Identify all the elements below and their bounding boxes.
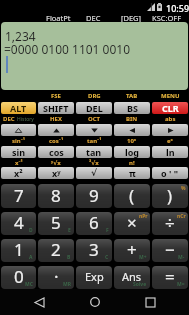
staticText: −: [165, 239, 175, 261]
staticText: √: [91, 168, 98, 178]
button[interactable]: Exp: [76, 266, 112, 289]
button[interactable]: xʸ: [38, 167, 74, 179]
button[interactable]: SHIFT: [38, 102, 74, 114]
staticText: o ' ": [161, 167, 179, 179]
button[interactable]: =: [152, 266, 188, 289]
button[interactable]: CLR: [152, 102, 188, 114]
button[interactable]: Back: [22, 289, 56, 315]
staticText: 1: [14, 239, 24, 261]
staticText: MENU: [161, 92, 180, 100]
staticText: DEL: [86, 102, 103, 114]
button[interactable]: Up outline: [1, 124, 36, 136]
button[interactable]: Right: [152, 124, 188, 136]
staticText: ÷: [165, 212, 175, 234]
button[interactable]: (: [114, 184, 150, 208]
staticText: D: [29, 227, 33, 234]
button[interactable]: 4: [1, 212, 36, 235]
staticText: HEX: [50, 115, 62, 123]
button[interactable]: Down: [76, 124, 112, 136]
button[interactable]: x²: [1, 167, 36, 179]
button[interactable]: ×: [114, 212, 150, 235]
staticText: nPr: [139, 213, 148, 220]
staticText: ×: [127, 212, 137, 234]
button[interactable]: 2: [38, 239, 74, 262]
staticText: nCr: [177, 213, 186, 220]
button[interactable]: +: [114, 239, 150, 262]
staticText: 0: [14, 266, 24, 288]
button[interactable]: Up: [38, 124, 74, 136]
staticText: FloatPt: [46, 13, 71, 22]
button[interactable]: ALT: [1, 102, 36, 114]
button[interactable]: 7: [1, 184, 36, 208]
button[interactable]: sin: [1, 146, 36, 158]
staticText: (: [129, 184, 135, 207]
staticText: 6: [89, 212, 99, 234]
staticText: OCT: [88, 115, 101, 123]
staticText: tan: [86, 146, 102, 158]
button[interactable]: −: [152, 239, 188, 262]
button[interactable]: BS: [114, 102, 150, 114]
staticText: ·: [54, 266, 59, 288]
staticText: M=: [177, 281, 185, 288]
button[interactable]: 3: [76, 239, 112, 262]
staticText: 2: [51, 239, 61, 261]
button[interactable]: 1: [1, 239, 36, 262]
staticText: sin: [12, 146, 26, 158]
button[interactable]: π: [114, 167, 150, 179]
button[interactable]: ÷: [152, 212, 188, 235]
staticText: 4: [14, 212, 24, 234]
button[interactable]: 8: [38, 184, 74, 208]
staticText: 10ˣ: [127, 137, 137, 145]
button[interactable]: Recents: [133, 289, 167, 315]
staticText: 3: [89, 239, 99, 261]
button[interactable]: ·: [38, 266, 74, 289]
staticText: [DEG]: [121, 13, 142, 22]
button[interactable]: Ans: [114, 266, 150, 289]
staticText: A: [29, 254, 33, 261]
staticText: MR: [63, 281, 71, 288]
button[interactable]: log: [114, 146, 150, 158]
button[interactable]: tan: [76, 146, 112, 158]
staticText: sin⁻¹: [12, 137, 26, 145]
button[interactable]: cos: [38, 146, 74, 158]
button[interactable]: 0: [1, 266, 36, 289]
button[interactable]: DEL: [76, 102, 112, 114]
button[interactable]: 9: [76, 184, 112, 208]
button[interactable]: 6: [76, 212, 112, 235]
staticText: 8: [51, 184, 61, 207]
staticText: 5: [51, 212, 61, 234]
staticText: %: [181, 185, 186, 192]
button[interactable]: ): [152, 184, 188, 208]
staticText: DRG: [88, 92, 101, 100]
staticText: E: [68, 227, 71, 234]
staticText: Exp: [85, 269, 104, 284]
staticText: MC: [25, 281, 33, 288]
staticText: cos⁻¹: [49, 137, 64, 145]
staticText: BS: [127, 102, 138, 114]
staticText: x²: [14, 167, 23, 179]
staticText: TAB: [126, 92, 138, 100]
staticText: log: [125, 146, 139, 158]
button[interactable]: Left: [114, 124, 150, 136]
staticText: n!: [129, 159, 135, 167]
staticText: Ans: [122, 269, 142, 284]
button[interactable]: √: [76, 167, 112, 179]
staticText: x⁻¹: [15, 159, 23, 167]
staticText: ln: [166, 146, 175, 158]
staticText: +: [127, 239, 137, 261]
staticText: xʸ: [52, 167, 61, 179]
staticText: 7: [14, 184, 24, 207]
staticText: F: [106, 227, 109, 234]
staticText: B: [67, 254, 71, 261]
staticText: C: [105, 254, 109, 261]
staticText: ALT: [10, 102, 27, 114]
staticText: M+: [139, 254, 147, 261]
staticText: History: [17, 116, 34, 123]
staticText: ʸ√x: [51, 159, 61, 167]
button[interactable]: 5: [38, 212, 74, 235]
staticText: cos: [49, 146, 64, 158]
button[interactable]: o ' ": [152, 167, 188, 179]
staticText: DEC: [3, 115, 15, 123]
button[interactable]: ln: [152, 146, 188, 158]
button[interactable]: Home: [78, 289, 112, 315]
